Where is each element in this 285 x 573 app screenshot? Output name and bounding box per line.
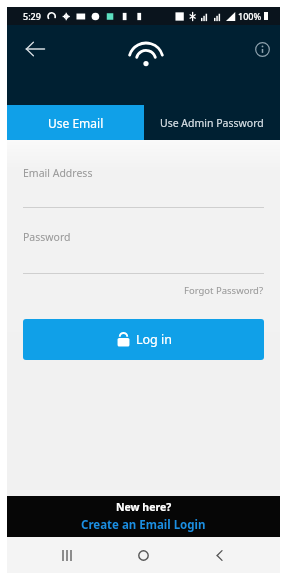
- button[interactable]: Back: [21, 35, 49, 63]
- staticText: Forgot Password?: [184, 284, 264, 297]
- staticText: New here?: [116, 500, 172, 514]
- button[interactable]: Password: [23, 230, 264, 244]
- staticText: 5:29: [23, 10, 41, 22]
- button[interactable]: Log in: [23, 319, 264, 360]
- button[interactable]: Forgot Password?: [184, 284, 264, 297]
- staticText: Password: [23, 230, 71, 244]
- staticText: Use Email: [48, 115, 104, 131]
- staticText: 100%: [238, 10, 262, 22]
- staticText: Log in: [136, 331, 173, 348]
- button[interactable]: Use Email: [7, 105, 144, 140]
- button[interactable]: Email Address: [23, 166, 264, 180]
- button[interactable]: Recent apps: [28, 537, 105, 573]
- button[interactable]: Create an Email Login: [81, 517, 206, 533]
- button[interactable]: Back: [181, 537, 257, 573]
- staticText: Email Address: [23, 166, 93, 180]
- staticText: Use Admin Password: [160, 116, 264, 130]
- button[interactable]: Use Admin Password: [144, 105, 280, 140]
- staticText: Create an Email Login: [81, 517, 206, 533]
- button[interactable]: Info: [248, 35, 276, 63]
- button[interactable]: Home: [105, 537, 181, 573]
